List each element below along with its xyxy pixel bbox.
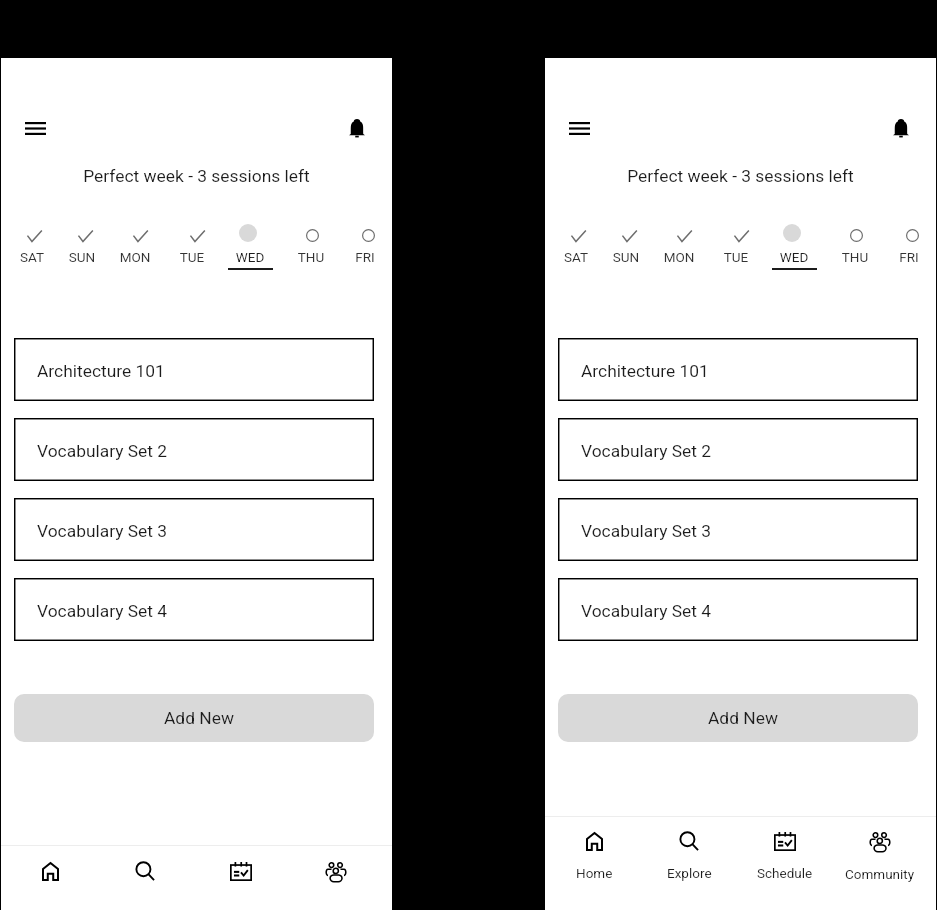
button[interactable]: THU [823, 218, 887, 274]
staticText: Architecture 101 [37, 361, 165, 381]
staticText: Add New [164, 708, 234, 728]
staticText: Explore [667, 865, 712, 881]
staticText: WED [762, 249, 826, 265]
staticText: WED [218, 249, 282, 265]
staticText: TUE [160, 249, 224, 265]
staticText: Perfect week - 3 sessions left [1, 166, 392, 186]
button[interactable]: Add New [14, 694, 374, 742]
button[interactable]: MON [647, 218, 711, 274]
button[interactable]: Architecture 101 [14, 338, 374, 401]
button[interactable]: TUE [160, 218, 224, 274]
staticText: FRI [877, 249, 937, 265]
button[interactable]: Architecture 101 [558, 338, 918, 401]
staticText: Community [845, 866, 915, 882]
button[interactable]: SAT [0, 218, 64, 274]
staticText: TUE [704, 249, 768, 265]
button[interactable]: MON [103, 218, 167, 274]
staticText: Add New [708, 708, 778, 728]
button[interactable]: Home [3, 846, 98, 909]
staticText: Perfect week - 3 sessions left [545, 166, 936, 186]
staticText: Vocabulary Set 3 [37, 521, 168, 541]
staticText: FRI [333, 249, 397, 265]
staticText: Vocabulary Set 3 [581, 521, 712, 541]
staticText: MON [103, 249, 167, 265]
staticText: THU [823, 249, 887, 265]
button[interactable]: Notifications [339, 110, 375, 146]
button[interactable]: Vocabulary Set 2 [14, 418, 374, 481]
button[interactable]: THU [279, 218, 343, 274]
staticText: Vocabulary Set 4 [581, 601, 712, 621]
button[interactable]: Menu [561, 110, 597, 146]
button[interactable]: Vocabulary Set 3 [14, 498, 374, 561]
button[interactable]: Explore [642, 817, 737, 909]
button[interactable]: Add New [558, 694, 918, 742]
button[interactable]: SUN [50, 218, 114, 274]
button[interactable]: FRI [877, 218, 937, 274]
staticText: SAT [544, 249, 608, 265]
button[interactable]: Menu [17, 110, 53, 146]
staticText: Schedule [757, 865, 813, 881]
button[interactable]: Schedule [737, 817, 832, 909]
staticText: THU [279, 249, 343, 265]
button[interactable]: Vocabulary Set 4 [558, 578, 918, 641]
button[interactable]: Community [832, 817, 927, 909]
staticText: Vocabulary Set 4 [37, 601, 168, 621]
button[interactable]: Schedule [193, 846, 288, 909]
staticText: Vocabulary Set 2 [581, 441, 712, 461]
staticText: MON [647, 249, 711, 265]
staticText: SUN [50, 249, 114, 265]
button[interactable]: TUE [704, 218, 768, 274]
button[interactable]: WED [218, 218, 282, 274]
button[interactable]: Vocabulary Set 2 [558, 418, 918, 481]
staticText: Architecture 101 [581, 361, 709, 381]
button[interactable]: FRI [333, 218, 397, 274]
staticText: SUN [594, 249, 658, 265]
button[interactable]: Community [288, 846, 383, 909]
button[interactable]: Vocabulary Set 4 [14, 578, 374, 641]
staticText: SAT [0, 249, 64, 265]
button[interactable]: SAT [544, 218, 608, 274]
button[interactable]: SUN [594, 218, 658, 274]
button[interactable]: Explore [98, 846, 193, 909]
staticText: Home [576, 865, 613, 881]
button[interactable]: Notifications [883, 110, 919, 146]
staticText: Vocabulary Set 2 [37, 441, 168, 461]
button[interactable]: Home [547, 817, 642, 909]
button[interactable]: Vocabulary Set 3 [558, 498, 918, 561]
button[interactable]: WED [762, 218, 826, 274]
